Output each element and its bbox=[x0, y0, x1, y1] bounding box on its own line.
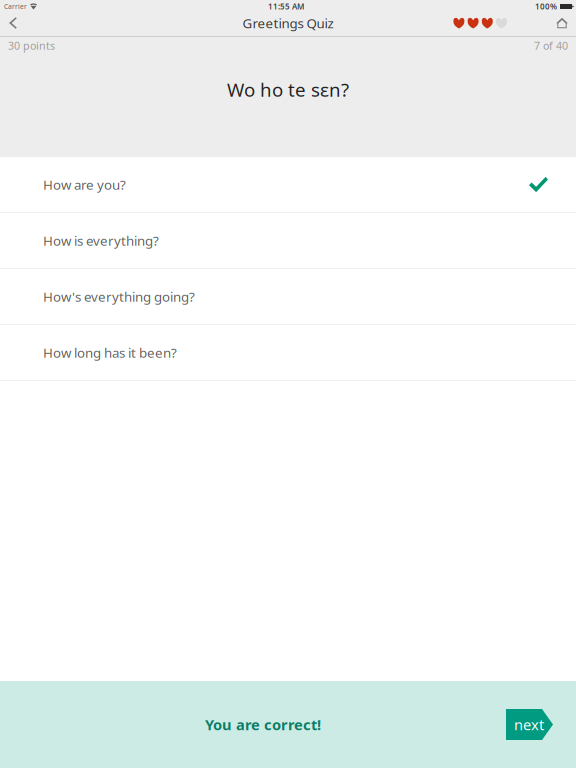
staticText: Greetings Quiz bbox=[242, 14, 333, 32]
staticText: Wo ho te sɛn? bbox=[227, 77, 349, 102]
button[interactable]: Home bbox=[552, 12, 572, 33]
staticText: 30 points bbox=[8, 38, 55, 53]
staticText: How long has it been? bbox=[43, 344, 177, 361]
button[interactable]: next bbox=[506, 709, 553, 740]
staticText: next bbox=[514, 715, 544, 734]
staticText: Carrier bbox=[4, 2, 27, 11]
staticText: How are you? bbox=[43, 176, 126, 193]
button[interactable]: How long has it been? bbox=[0, 325, 576, 381]
button[interactable]: How's everything going? bbox=[0, 269, 576, 325]
staticText: How is everything? bbox=[43, 232, 159, 249]
staticText: 100% bbox=[535, 1, 557, 12]
staticText: How's everything going? bbox=[43, 288, 195, 305]
staticText: 11:55 AM bbox=[268, 1, 304, 12]
button[interactable]: How are you? bbox=[0, 157, 576, 213]
staticText: 7 of 40 bbox=[534, 38, 568, 53]
button[interactable]: Back bbox=[9, 12, 35, 33]
button[interactable]: How is everything? bbox=[0, 213, 576, 269]
staticText: You are correct! bbox=[205, 715, 321, 734]
